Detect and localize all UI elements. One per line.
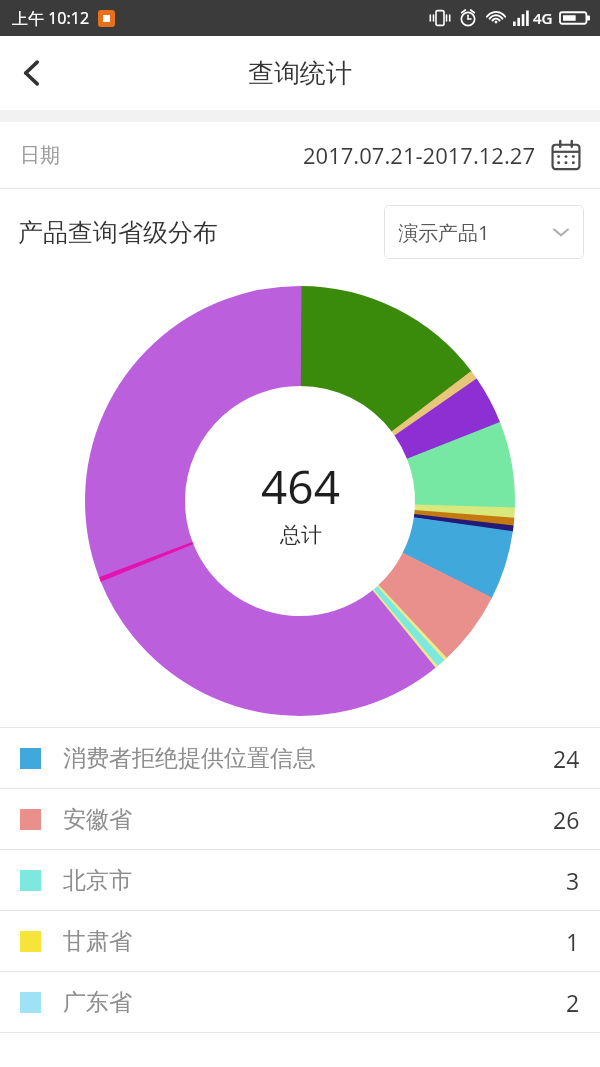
staticText: 产品查询省级分布 — [18, 217, 218, 248]
staticText: 甘肃省 — [63, 927, 566, 956]
button[interactable]: 安徽省 — [0, 789, 600, 849]
staticText: 2017.07.21-2017.12.27 — [303, 140, 536, 170]
staticText: 总计 — [280, 522, 322, 548]
button[interactable]: 日期 — [0, 122, 600, 188]
staticText: 安徽省 — [63, 805, 553, 834]
staticText: 消费者拒绝提供位置信息 — [63, 744, 553, 773]
staticText: 日期 — [20, 143, 60, 168]
staticText: 广东省 — [63, 988, 566, 1017]
staticText: 24 — [553, 743, 580, 774]
staticText: 2 — [566, 987, 580, 1018]
button[interactable]: 北京市 — [0, 850, 600, 910]
other: 选择日期 — [550, 139, 582, 171]
staticText: 464 — [261, 455, 340, 518]
staticText: 1 — [566, 926, 580, 957]
button[interactable]: 甘肃省 — [0, 911, 600, 971]
staticText: 演示产品1 — [398, 219, 490, 246]
staticText: 上午 10:12 — [12, 7, 90, 29]
button[interactable]: 演示产品1 — [384, 205, 584, 259]
staticText: 北京市 — [63, 866, 566, 895]
staticText: 查询统计 — [248, 57, 352, 90]
button[interactable]: 返回 — [0, 41, 64, 105]
button[interactable]: 消费者拒绝提供位置信息 — [0, 728, 600, 788]
staticText: 26 — [553, 804, 580, 835]
staticText: 3 — [566, 865, 580, 896]
staticText: 4G — [533, 8, 553, 28]
button[interactable]: 广东省 — [0, 972, 600, 1032]
